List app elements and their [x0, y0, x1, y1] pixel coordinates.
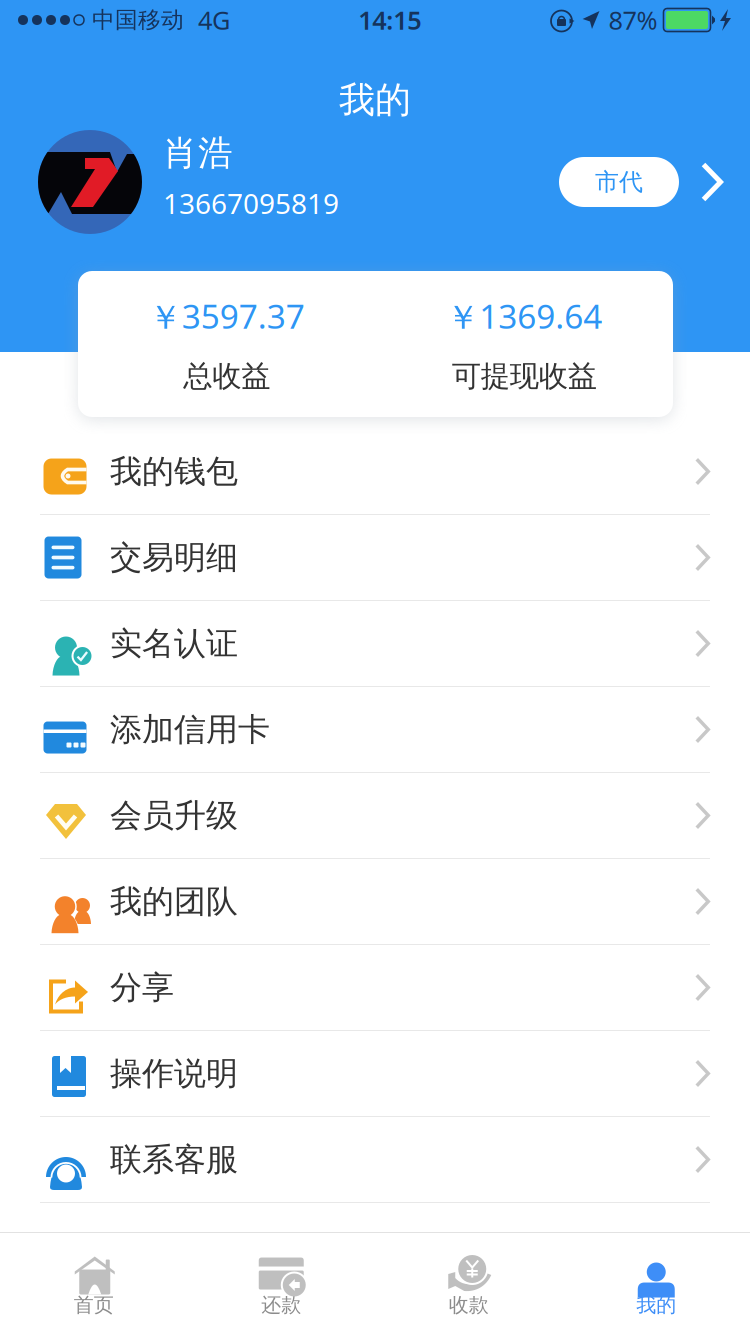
staticText: ￥1369.64 [446, 294, 602, 338]
staticText: 还款 [261, 1293, 301, 1317]
button[interactable]: 操作说明 [0, 1031, 750, 1116]
button[interactable]: 会员升级 [0, 773, 750, 858]
staticText: ￥3597.37 [149, 294, 305, 338]
staticText: 我的钱包 [110, 452, 238, 491]
staticText: 总收益 [183, 358, 270, 394]
staticText: 4G [198, 3, 230, 37]
staticText: 我的 [339, 78, 411, 122]
button[interactable]: 交易明细 [0, 515, 750, 600]
staticText: 会员升级 [110, 796, 238, 835]
staticText: 添加信用卡 [110, 710, 270, 749]
staticText: 联系客服 [110, 1140, 238, 1179]
button[interactable]: 我的团队 [0, 859, 750, 944]
button[interactable]: 我的钱包 [0, 429, 750, 514]
staticText: 首页 [74, 1293, 114, 1317]
staticText: 可提现收益 [452, 358, 597, 394]
button[interactable]: 更多 [690, 154, 734, 210]
staticText: 中国移动 [92, 6, 184, 34]
staticText: 13667095819 [163, 185, 339, 222]
staticText: 交易明细 [110, 538, 238, 577]
staticText: 肖浩 [163, 132, 233, 175]
button[interactable]: 首页 [0, 1233, 187, 1334]
staticText: 我的团队 [110, 882, 238, 921]
button[interactable]: 市代 [559, 157, 679, 207]
staticText: 分享 [110, 968, 174, 1007]
button[interactable]: 收款 [375, 1233, 562, 1334]
button[interactable]: 分享 [0, 945, 750, 1030]
staticText: 操作说明 [110, 1054, 238, 1093]
button[interactable]: 联系客服 [0, 1117, 750, 1202]
staticText: 14:15 [358, 3, 421, 37]
button[interactable]: 我的 [562, 1233, 750, 1334]
staticText: 收款 [449, 1293, 489, 1317]
staticText: 我的 [636, 1293, 676, 1317]
staticText: 市代 [595, 167, 643, 197]
staticText: 87% [608, 3, 657, 37]
button[interactable]: 添加信用卡 [0, 687, 750, 772]
button[interactable]: 还款 [187, 1233, 375, 1334]
staticText: 实名认证 [110, 624, 238, 663]
button[interactable]: 实名认证 [0, 601, 750, 686]
